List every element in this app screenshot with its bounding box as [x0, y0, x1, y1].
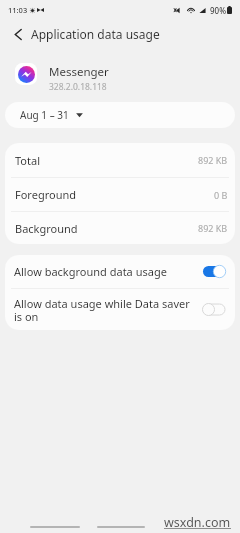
staticText: Messenger	[49, 64, 109, 80]
staticText: 0 B	[214, 189, 228, 201]
button[interactable]: Foreground	[5, 178, 235, 211]
staticText: Allow data usage while Data saver is on	[14, 296, 194, 324]
button[interactable]: Aug 1 – 31	[5, 102, 235, 128]
staticText: Foreground	[15, 187, 76, 202]
staticText: Allow background data usage	[14, 264, 194, 279]
button[interactable]: Total	[5, 143, 235, 177]
staticText: 892 KB	[198, 222, 228, 234]
staticText: Application data usage	[31, 26, 160, 42]
staticText: 90%	[210, 5, 226, 16]
staticText: 11:03	[8, 5, 28, 15]
staticText: Background	[15, 221, 78, 236]
button[interactable]: Allow data usage while Data saver is on	[5, 289, 235, 330]
staticText: Aug 1 – 31	[20, 108, 69, 122]
button[interactable]: Navigate up	[8, 24, 28, 44]
button[interactable]: Allow background data usage	[5, 255, 235, 288]
button[interactable]: Background	[5, 212, 235, 244]
staticText: wsxdn.com	[164, 514, 231, 531]
staticText: 892 KB	[198, 154, 228, 166]
staticText: Total	[15, 153, 40, 168]
staticText: 328.2.0.18.118	[49, 81, 107, 93]
